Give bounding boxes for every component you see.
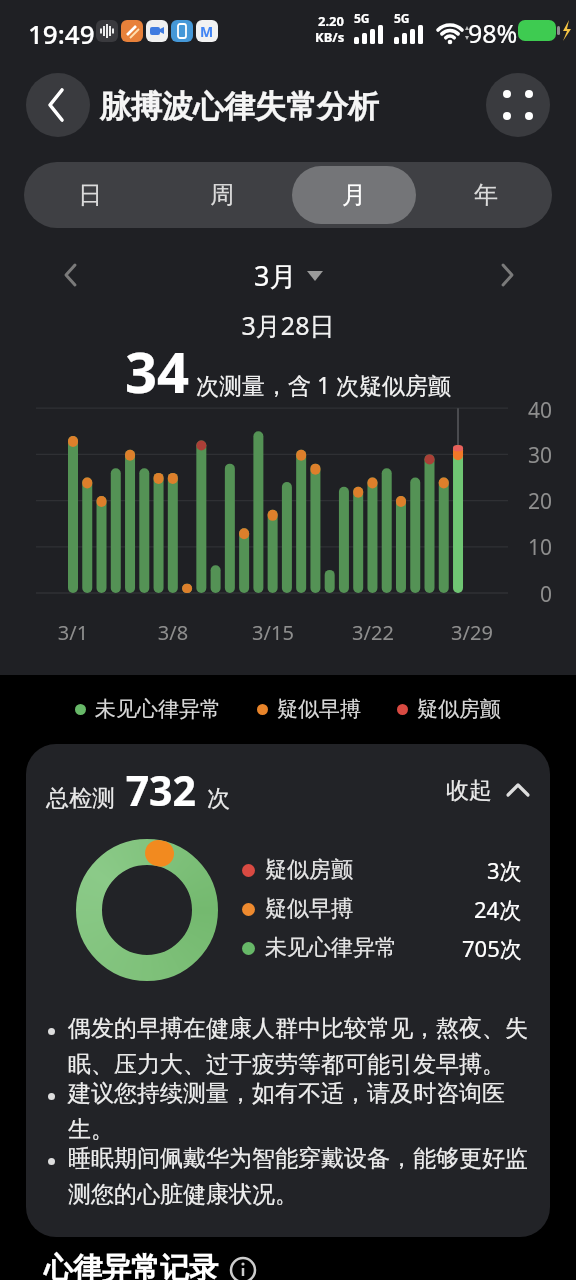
staticText: 疑似早搏 — [277, 696, 361, 722]
staticText: 疑似早搏 — [265, 895, 353, 923]
staticText: 周 — [210, 180, 234, 210]
staticText: 3/8 — [133, 619, 213, 646]
button[interactable]: 3月 — [0, 255, 576, 295]
staticText: 收起 — [446, 776, 492, 805]
staticText: 睡眠期间佩戴华为智能穿戴设备，能够更好监测您的心脏健康状况。 — [68, 1144, 530, 1209]
staticText: 3/15 — [233, 619, 313, 646]
staticText: 总检测 — [46, 784, 115, 813]
staticText: 30 — [512, 441, 552, 470]
staticText: 心律异常记录 — [44, 1250, 218, 1280]
staticText: 19:49 — [28, 16, 95, 51]
staticText: 5G — [354, 10, 370, 26]
staticText: 3/29 — [432, 619, 512, 646]
staticText: 建议您持续测量，如有不适，请及时咨询医生。 — [68, 1079, 530, 1144]
button[interactable]: 周 — [160, 166, 284, 224]
staticText: M — [200, 22, 214, 41]
staticText: 2.20 — [318, 12, 344, 30]
button[interactable] — [486, 73, 550, 137]
staticText: 5G — [394, 10, 410, 26]
staticText: 脉搏波心律失常分析 — [100, 87, 379, 126]
staticText: 次测量，含 1 次疑似房颤 — [190, 369, 452, 400]
button[interactable] — [228, 1255, 258, 1280]
staticText: KB/s — [315, 28, 345, 46]
staticText: 24次 — [474, 894, 522, 924]
staticText: 次 — [207, 784, 230, 813]
button[interactable] — [62, 263, 80, 287]
staticText: 年 — [474, 180, 498, 210]
staticText: 月 — [342, 180, 366, 210]
staticText: 3/22 — [333, 619, 413, 646]
staticText: 日 — [78, 180, 102, 210]
staticText: 3次 — [487, 855, 522, 885]
staticText: 40 — [512, 396, 552, 425]
staticText: 705次 — [462, 933, 522, 963]
button[interactable]: 日 — [28, 166, 152, 224]
staticText: 偶发的早搏在健康人群中比较常见，熬夜、失眠、压力大、过于疲劳等都可能引发早搏。 — [68, 1014, 530, 1079]
staticText: 20 — [512, 487, 552, 516]
staticText: 未见心律异常 — [265, 934, 397, 962]
staticText: 98% — [468, 16, 518, 50]
button[interactable]: 年 — [424, 166, 548, 224]
staticText: 3月28日 — [0, 308, 576, 342]
button[interactable] — [26, 73, 90, 137]
staticText: 3/1 — [33, 619, 113, 646]
button[interactable]: 收起 — [446, 776, 530, 805]
staticText: 疑似房颤 — [417, 696, 501, 722]
button[interactable]: 月 — [292, 166, 416, 224]
staticText: 10 — [512, 533, 552, 562]
staticText: 34 — [125, 333, 190, 397]
staticText: 0 — [512, 580, 552, 609]
button[interactable] — [498, 263, 516, 287]
staticText: 疑似房颤 — [265, 856, 353, 884]
staticText: 未见心律异常 — [95, 696, 221, 722]
staticText: 3月 — [254, 257, 297, 294]
staticText: 732 — [115, 762, 207, 818]
